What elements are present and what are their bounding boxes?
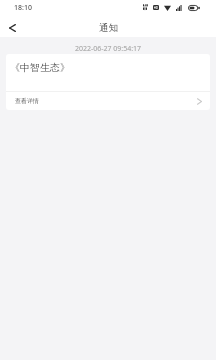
staticText: 《中智生态》 [10, 61, 70, 74]
button[interactable]: 查看详情 [6, 92, 210, 110]
staticText: 通知 [99, 22, 118, 34]
button[interactable]: Back [0, 17, 25, 39]
button[interactable]: 《中智生态》 [6, 54, 210, 91]
staticText: 2022-06-27 09:54:17 [0, 44, 216, 54]
staticText: 18:10 [14, 3, 32, 13]
staticText: 查看详情 [15, 97, 39, 105]
